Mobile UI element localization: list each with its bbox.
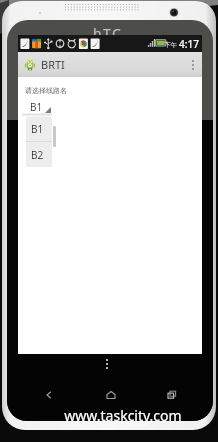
staticText: 下午 bbox=[164, 41, 177, 49]
staticText: 4:17 bbox=[179, 37, 199, 51]
button[interactable]: More options bbox=[106, 359, 108, 369]
button[interactable]: Home bbox=[80, 385, 141, 405]
staticText: B2 bbox=[31, 148, 44, 162]
button[interactable]: Recent apps bbox=[141, 385, 202, 405]
staticText: B1 bbox=[31, 122, 44, 136]
staticText: B1 bbox=[30, 100, 43, 114]
button[interactable]: B1 bbox=[22, 100, 56, 114]
staticText: BRTI bbox=[41, 57, 65, 72]
staticText: hTC bbox=[93, 24, 123, 43]
button[interactable]: B2 bbox=[26, 142, 52, 167]
staticText: www.taskcity.com bbox=[64, 406, 182, 425]
button[interactable]: B1 bbox=[26, 117, 52, 141]
button[interactable]: Back bbox=[18, 385, 80, 405]
staticText: 请选择线路名 bbox=[25, 86, 67, 95]
button[interactable]: More options bbox=[184, 52, 202, 77]
